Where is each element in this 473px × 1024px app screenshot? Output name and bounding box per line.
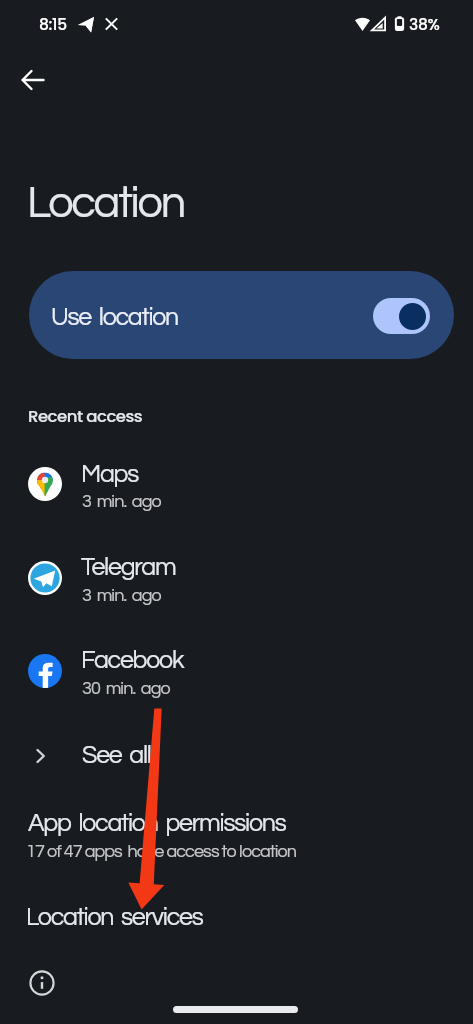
staticText: 3 min. ago	[82, 586, 161, 605]
staticText: Use location	[51, 304, 179, 330]
staticText: 38%	[409, 14, 440, 36]
button[interactable]: Facebook	[0, 642, 473, 706]
staticText: 17 of 47 apps have access to location	[26, 842, 297, 861]
staticText: Recent access	[28, 405, 143, 428]
button[interactable]: Back	[11, 58, 55, 102]
staticText: Telegram	[81, 554, 176, 580]
button[interactable]: Information	[24, 965, 60, 1001]
button[interactable]: Telegram	[0, 549, 473, 613]
staticText: 3 min. ago	[82, 492, 161, 511]
staticText: Maps	[81, 461, 138, 487]
other: Telegram notification	[77, 16, 94, 33]
button[interactable]: App location permissions	[0, 800, 473, 862]
staticText: Location services	[26, 904, 203, 930]
button[interactable]: Location services	[0, 890, 473, 938]
staticText: Facebook	[81, 647, 184, 673]
staticText: 8:15	[39, 14, 67, 36]
button[interactable]: See all	[0, 728, 473, 780]
button[interactable]: Use location	[29, 271, 454, 359]
staticText: Location	[27, 180, 184, 226]
staticText: 30 min. ago	[82, 679, 170, 698]
button[interactable]: Maps	[0, 455, 473, 519]
other: Battery 38 percent	[394, 16, 405, 31]
staticText: App location permissions	[28, 810, 286, 836]
button[interactable]: Use location toggle	[373, 298, 430, 334]
staticText: See all	[82, 742, 151, 768]
other: X notification	[105, 18, 118, 30]
